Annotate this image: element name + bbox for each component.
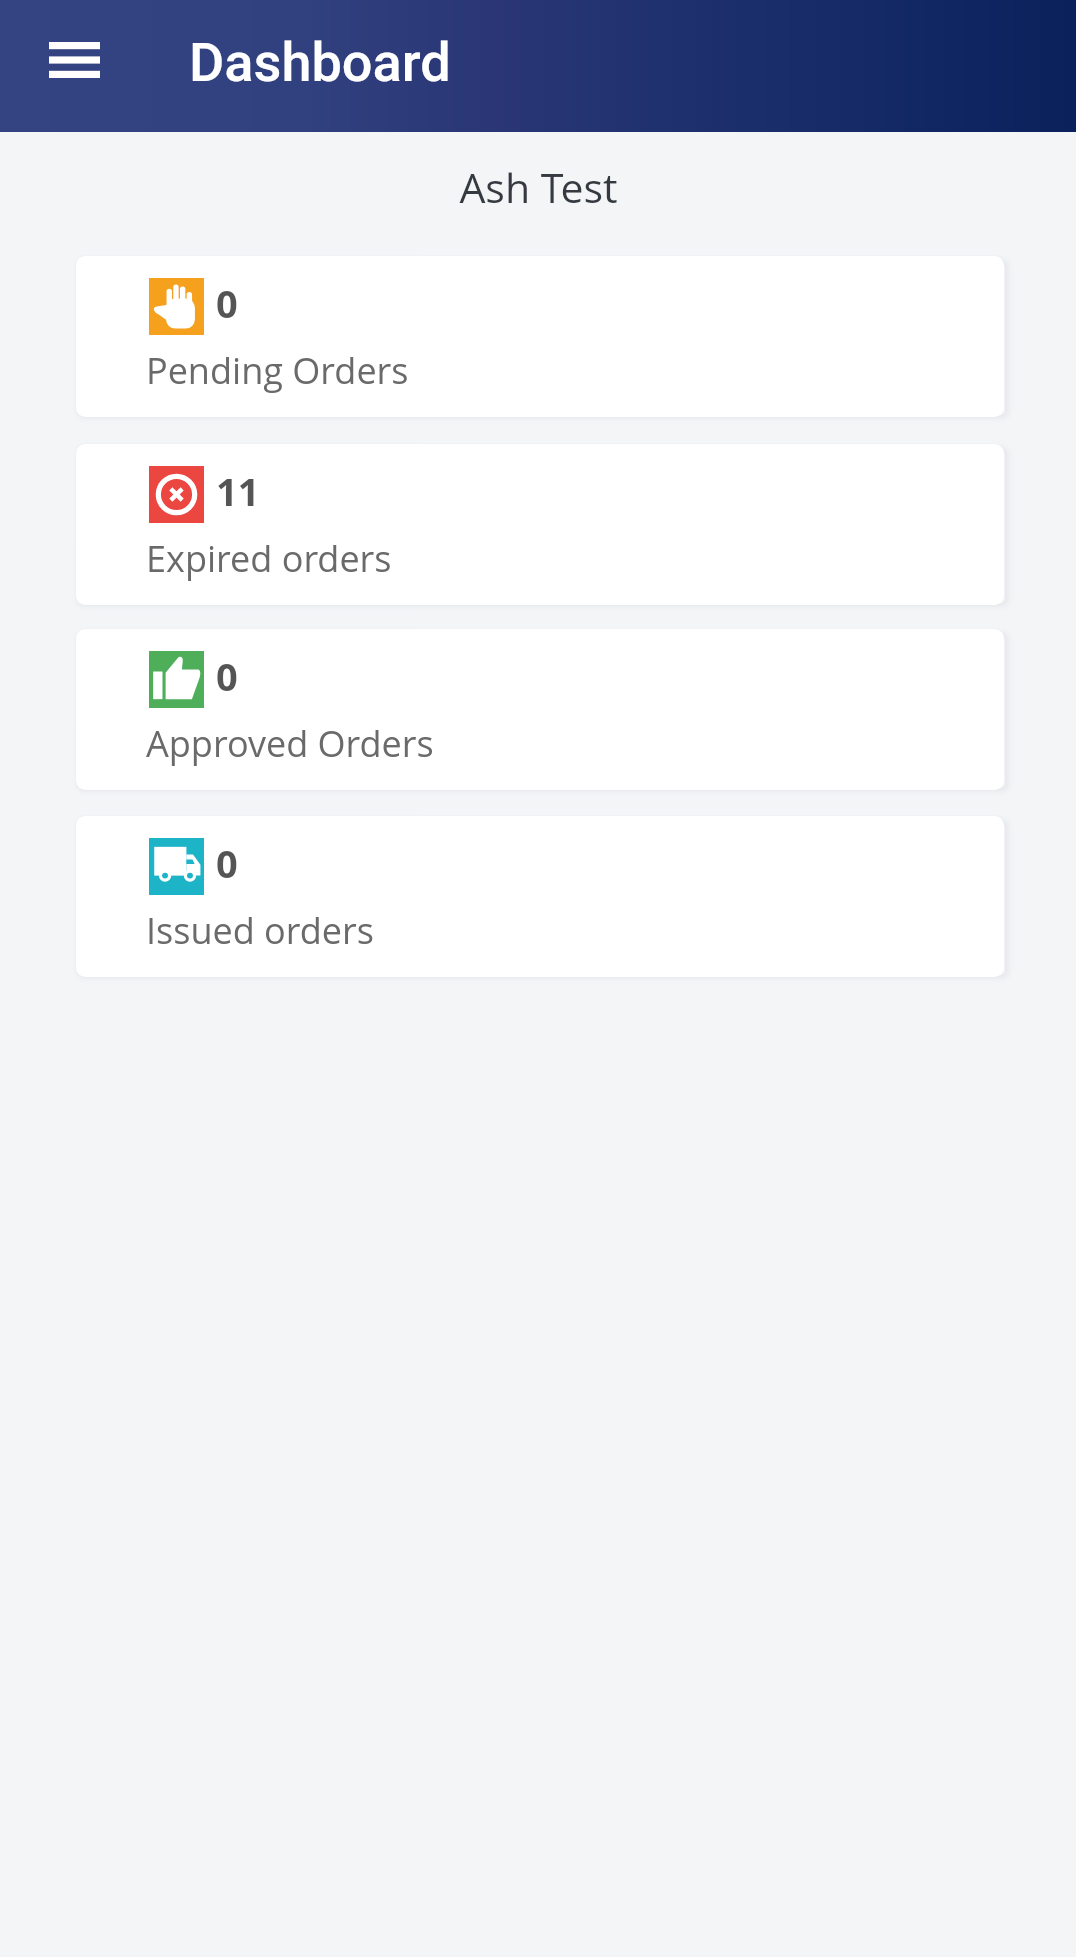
button[interactable]: 0	[76, 629, 1004, 790]
staticText: Ash Test	[459, 159, 618, 215]
staticText: 0	[216, 650, 238, 702]
button[interactable]: 0	[76, 816, 1004, 977]
staticText: 0	[216, 277, 238, 329]
button[interactable]: 11	[76, 444, 1004, 605]
staticText: Expired orders	[146, 534, 392, 583]
staticText: Issued orders	[146, 906, 374, 955]
staticText: 0	[216, 837, 238, 889]
button[interactable]: Open navigation menu	[20, 0, 128, 132]
staticText: Dashboard	[189, 31, 451, 94]
staticText: Pending Orders	[146, 346, 409, 395]
staticText: Approved Orders	[146, 719, 434, 768]
button[interactable]: 0	[76, 256, 1004, 417]
staticText: 11	[216, 465, 260, 517]
